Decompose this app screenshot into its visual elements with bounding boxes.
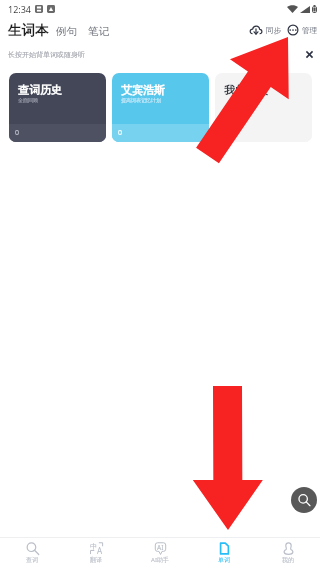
- staticText: 12:34: [8, 3, 32, 15]
- button[interactable]: 查词: [0, 538, 64, 568]
- staticText: 单词: [218, 556, 230, 564]
- button[interactable]: 管理: [286, 24, 318, 36]
- button[interactable]: 我的: [256, 538, 320, 568]
- button[interactable]: 同步: [248, 23, 282, 37]
- staticText: 生词本: [8, 22, 49, 39]
- staticText: 0: [118, 128, 123, 138]
- staticText: 0: [15, 128, 20, 138]
- staticText: 同步: [266, 26, 281, 35]
- button[interactable]: Search: [291, 487, 317, 513]
- staticText: 提高词表记忆计划: [121, 97, 161, 103]
- button[interactable]: 我的词表: [215, 73, 312, 142]
- staticText: 笔记: [88, 25, 109, 38]
- button[interactable]: 例句: [56, 25, 77, 39]
- button[interactable]: 笔记: [88, 25, 109, 39]
- button[interactable]: 生词本: [8, 22, 49, 39]
- staticText: 长按开始背单词或随身听: [8, 50, 85, 59]
- staticText: AI: [157, 543, 164, 552]
- staticText: 查词历史: [18, 83, 62, 97]
- button[interactable]: 艾宾浩斯: [112, 73, 209, 142]
- button[interactable]: 中: [64, 538, 128, 568]
- staticText: 管理: [302, 26, 317, 35]
- staticText: 查词: [26, 556, 38, 564]
- button[interactable]: 单词: [192, 538, 256, 568]
- staticText: 中: [90, 542, 97, 551]
- staticText: 例句: [56, 25, 77, 38]
- staticText: 全面回顾: [18, 97, 38, 103]
- button[interactable]: AI: [128, 538, 192, 568]
- button[interactable]: 查词历史: [9, 73, 106, 142]
- staticText: 我的: [282, 556, 294, 564]
- staticText: AI助手: [151, 556, 169, 564]
- staticText: 我的词表: [224, 83, 268, 97]
- staticText: 翻译: [90, 556, 102, 564]
- staticText: 艾宾浩斯: [121, 83, 165, 97]
- staticText: A: [97, 545, 103, 556]
- button[interactable]: Close: [302, 47, 316, 61]
